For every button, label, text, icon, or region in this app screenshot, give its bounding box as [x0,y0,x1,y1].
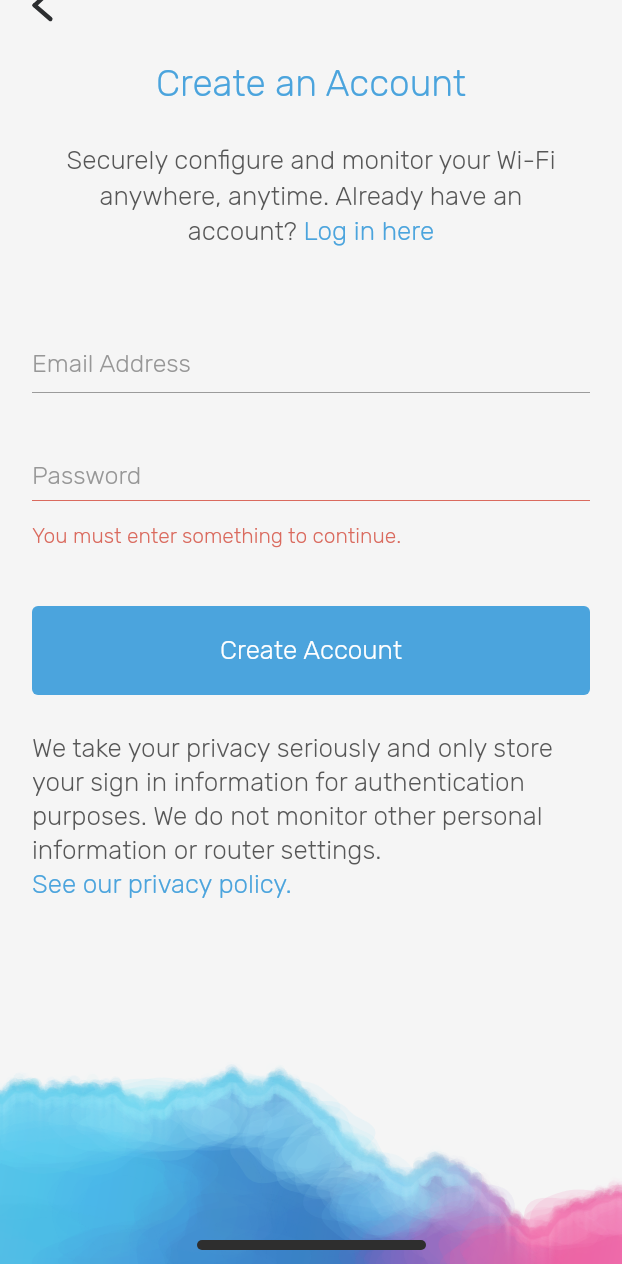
staticText: We take your privacy seriously and only … [32,733,590,899]
staticText: Email Address [32,349,191,379]
staticText: Create an Account [0,61,622,105]
staticText: You must enter something to continue. [32,523,402,548]
staticText: Create Account [220,635,403,666]
staticText: Password [32,461,142,491]
button[interactable]: Create Account [32,606,590,695]
button[interactable]: Back [0,0,62,36]
staticText: Securely configure and monitor your Wi-F… [49,145,573,246]
